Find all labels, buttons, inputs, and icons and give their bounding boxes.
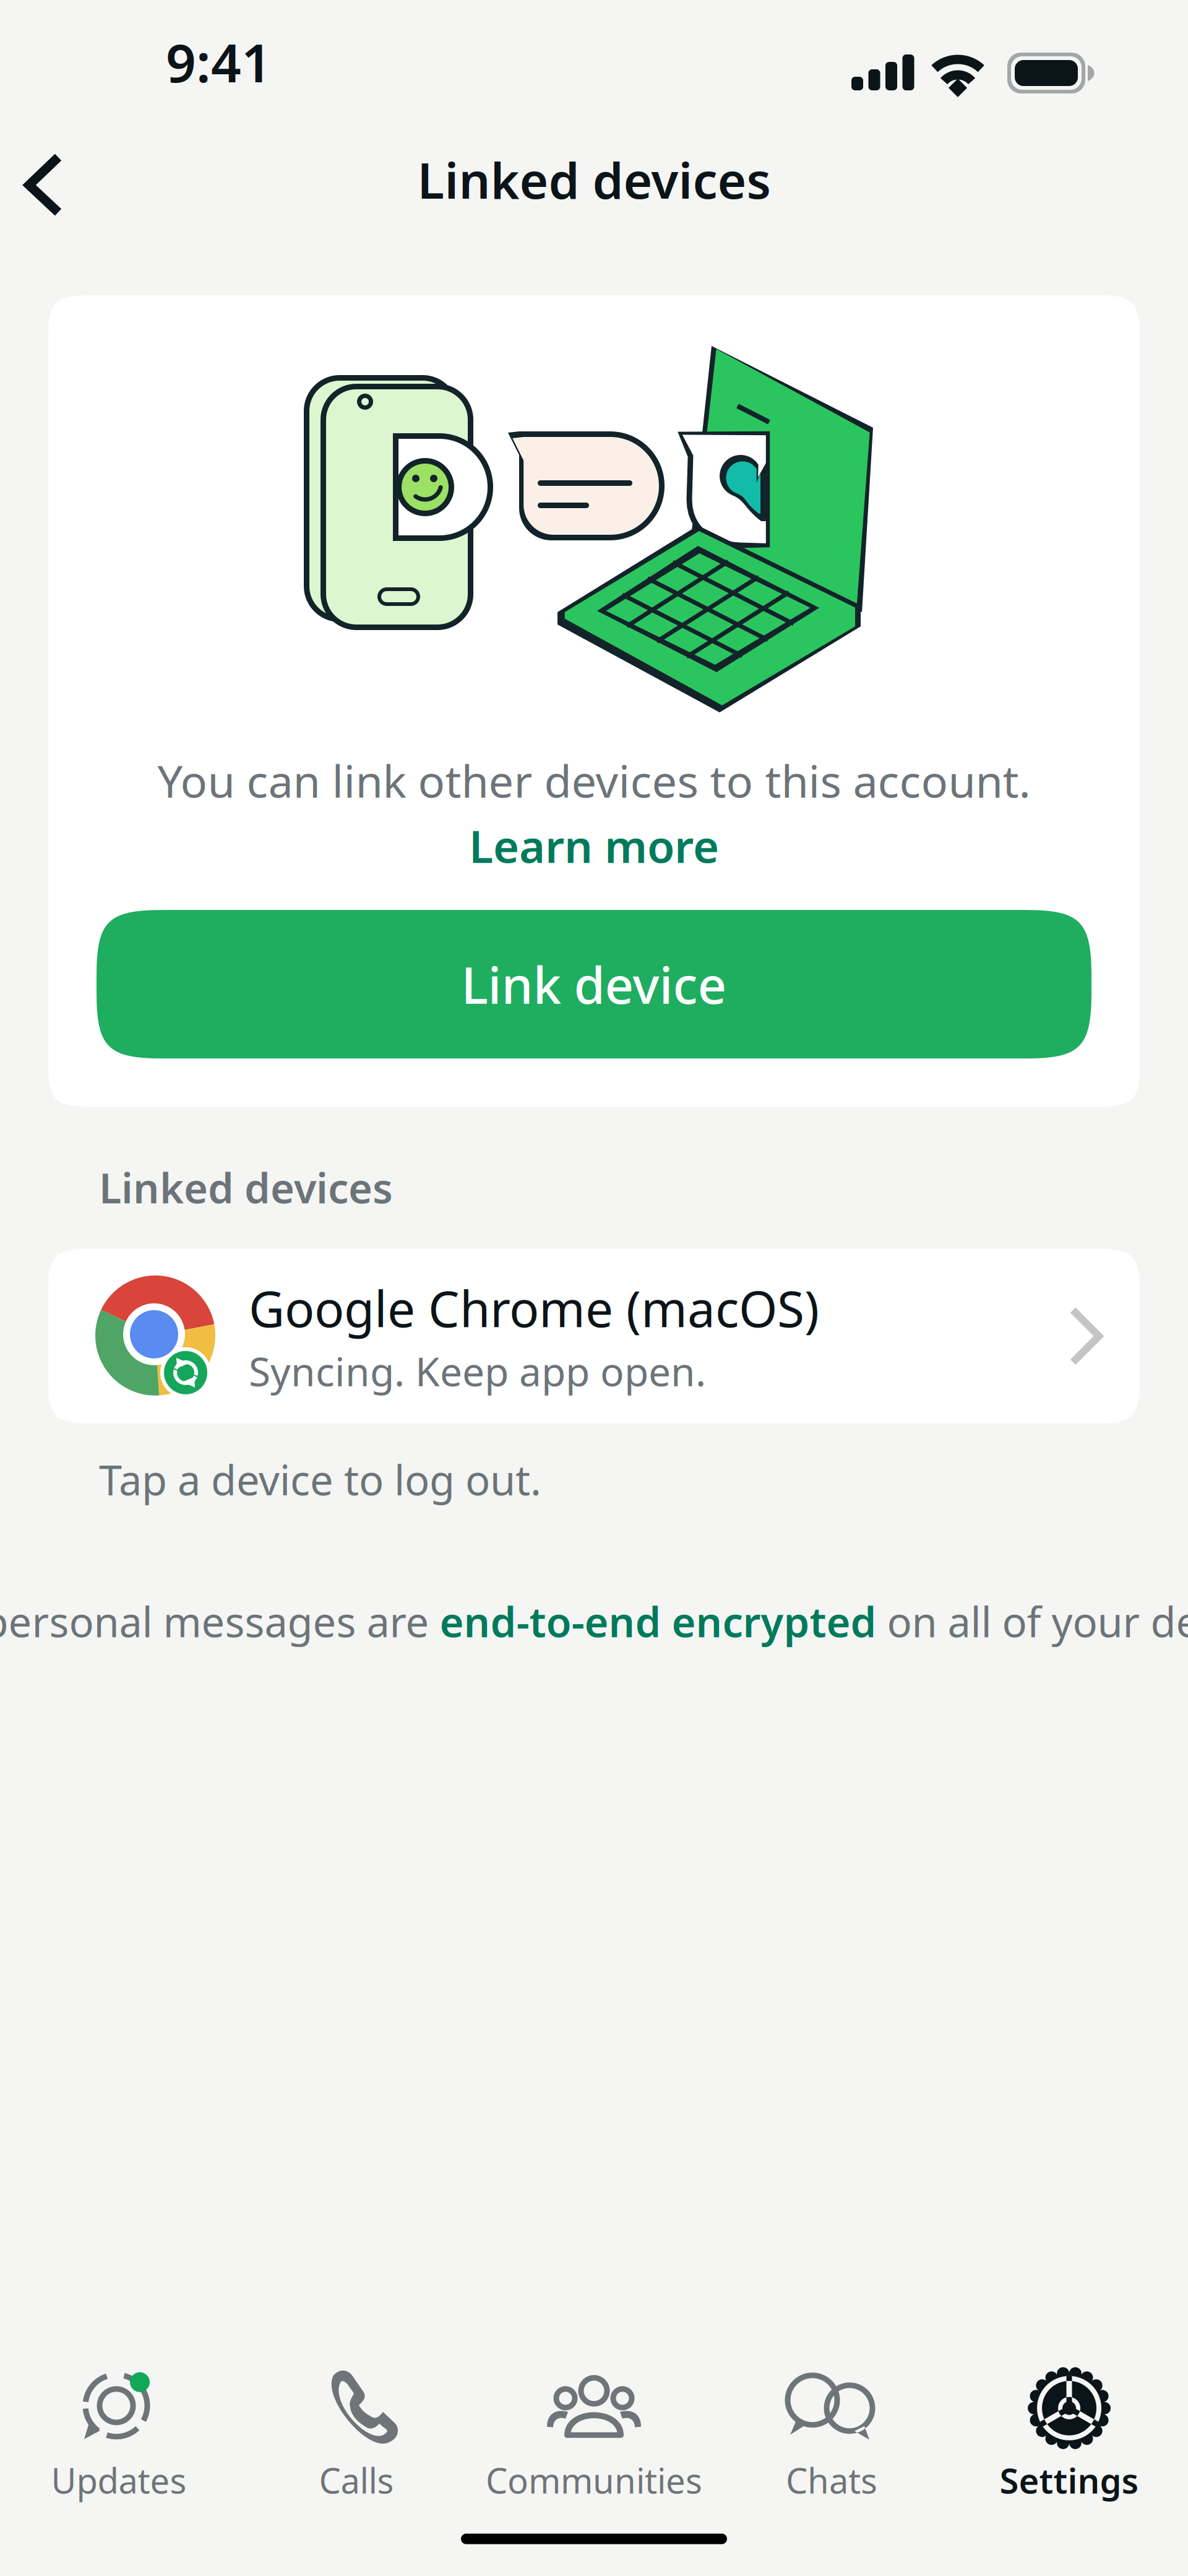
staticText: Linked devices [99,1160,393,1215]
staticText: on all of your devices. [876,1594,1188,1649]
staticText: end-to-end encrypted [440,1594,876,1649]
button[interactable]: Settings [950,2368,1188,2502]
staticText: Communities [486,2457,702,2503]
staticText: Link device [461,951,727,1018]
staticText: Syncing. Keep app open. [249,1345,706,1397]
staticText: You can link other devices to this accou… [157,751,1031,810]
staticText: Calls [319,2457,394,2503]
staticText: Linked devices [417,147,771,212]
button[interactable]: Back [0,124,111,235]
button[interactable]: Communities [475,2368,713,2502]
button[interactable]: Calls [238,2368,475,2502]
button[interactable]: Link device [97,910,1091,1058]
staticText: Learn more [469,816,719,875]
button[interactable]: Updates [0,2368,238,2502]
staticText: Your personal messages are [0,1594,440,1649]
staticText: 9:41 [166,27,272,97]
button[interactable]: Google Chrome (macOS) [48,1249,1140,1423]
button[interactable]: Learn more [469,810,719,879]
staticText: Tap a device to log out. [99,1452,541,1507]
button[interactable]: Chats [713,2368,950,2502]
staticText: Settings [1000,2457,1139,2503]
staticText: Updates [51,2457,187,2503]
staticText: Google Chrome (macOS) [249,1275,819,1341]
staticText: Chats [786,2457,877,2503]
